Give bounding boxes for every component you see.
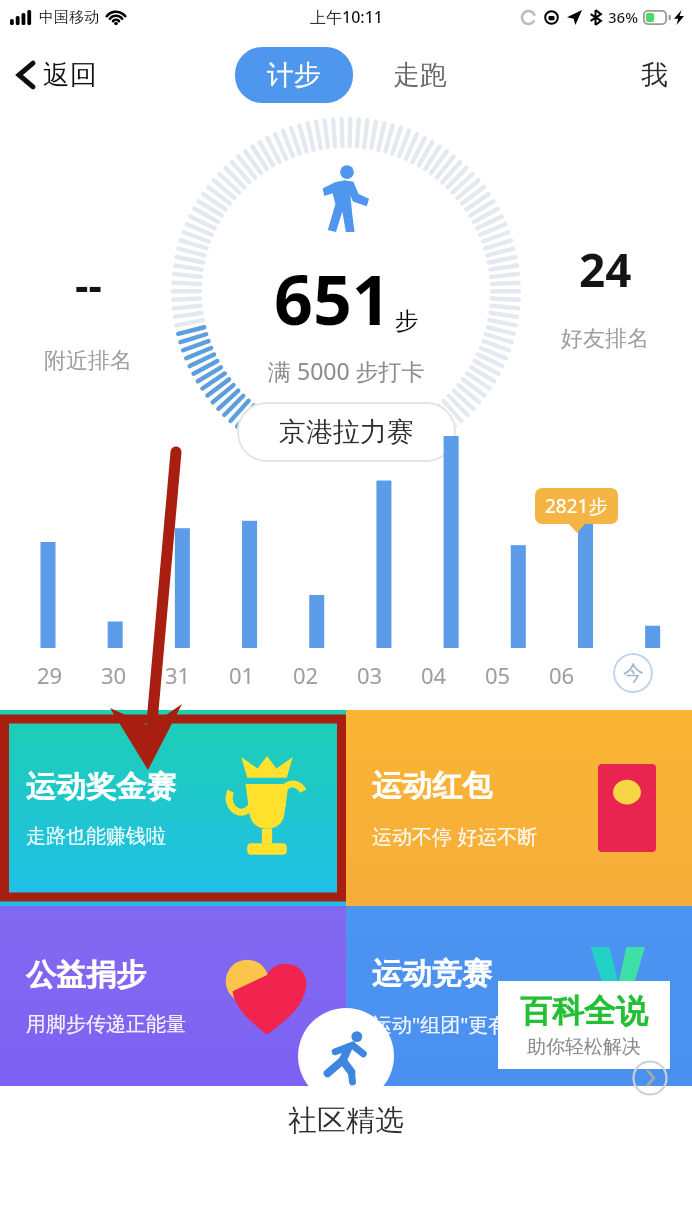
staticText: 百科全说	[520, 991, 648, 1031]
staticText: 满 5000 步打卡	[268, 355, 425, 386]
staticText: 走路也能赚钱啦	[26, 824, 166, 849]
button[interactable]: 我	[631, 50, 678, 100]
button[interactable]: 计步	[235, 47, 353, 103]
button[interactable]: 运动竞赛	[346, 906, 692, 1086]
staticText: --	[75, 256, 102, 313]
staticText: 公益捐步	[26, 956, 146, 994]
staticText: 计步	[267, 58, 321, 92]
staticText: 02	[293, 660, 319, 690]
staticText: 好友排名	[561, 325, 649, 353]
staticText: 中国移动	[39, 8, 99, 27]
staticText: 运动不停 好运不断	[372, 823, 538, 850]
staticText: 运动奖金赛	[26, 768, 176, 806]
staticText: 2821步	[545, 493, 608, 519]
staticText: 运动竞赛	[372, 955, 492, 993]
staticText: 运动红包	[372, 767, 492, 805]
button[interactable]: 开始跑步	[298, 1008, 394, 1104]
staticText: 附近排名	[44, 347, 132, 375]
staticText: 社区精选	[288, 1102, 404, 1139]
button[interactable]: --	[28, 256, 148, 375]
button[interactable]: 京港拉力赛	[237, 402, 456, 462]
staticText: 05	[485, 660, 511, 690]
staticText: 返回	[43, 58, 97, 92]
staticText: 我	[641, 58, 668, 92]
button[interactable]: 公益捐步	[0, 906, 346, 1086]
button[interactable]: 返回	[10, 50, 103, 100]
staticText: 上午10:11	[310, 6, 383, 28]
staticText: 01	[229, 660, 255, 690]
button[interactable]: 更多	[630, 1058, 670, 1098]
staticText: 24	[579, 238, 632, 301]
button[interactable]: 运动红包	[346, 710, 692, 906]
button[interactable]: 运动奖金赛	[0, 710, 346, 906]
staticText: 助你轻松解决	[527, 1035, 641, 1059]
staticText: 651	[274, 252, 391, 345]
staticText: 运动"组团"更有趣	[372, 1011, 529, 1038]
staticText: 06	[549, 660, 575, 690]
staticText: 29	[37, 660, 63, 690]
staticText: 04	[421, 660, 447, 690]
staticText: 30	[101, 660, 127, 690]
staticText: 京港拉力赛	[279, 415, 414, 449]
staticText: 03	[357, 660, 383, 690]
staticText: 36%	[608, 7, 638, 27]
button[interactable]: 今	[613, 653, 653, 693]
staticText: 步	[395, 306, 419, 336]
staticText: 走跑	[393, 58, 447, 92]
staticText: 今	[623, 660, 644, 686]
staticText: 用脚步传递正能量	[26, 1012, 186, 1037]
staticText: 31	[165, 660, 191, 690]
button[interactable]: 24	[540, 238, 670, 353]
button[interactable]: 走跑	[383, 47, 457, 103]
